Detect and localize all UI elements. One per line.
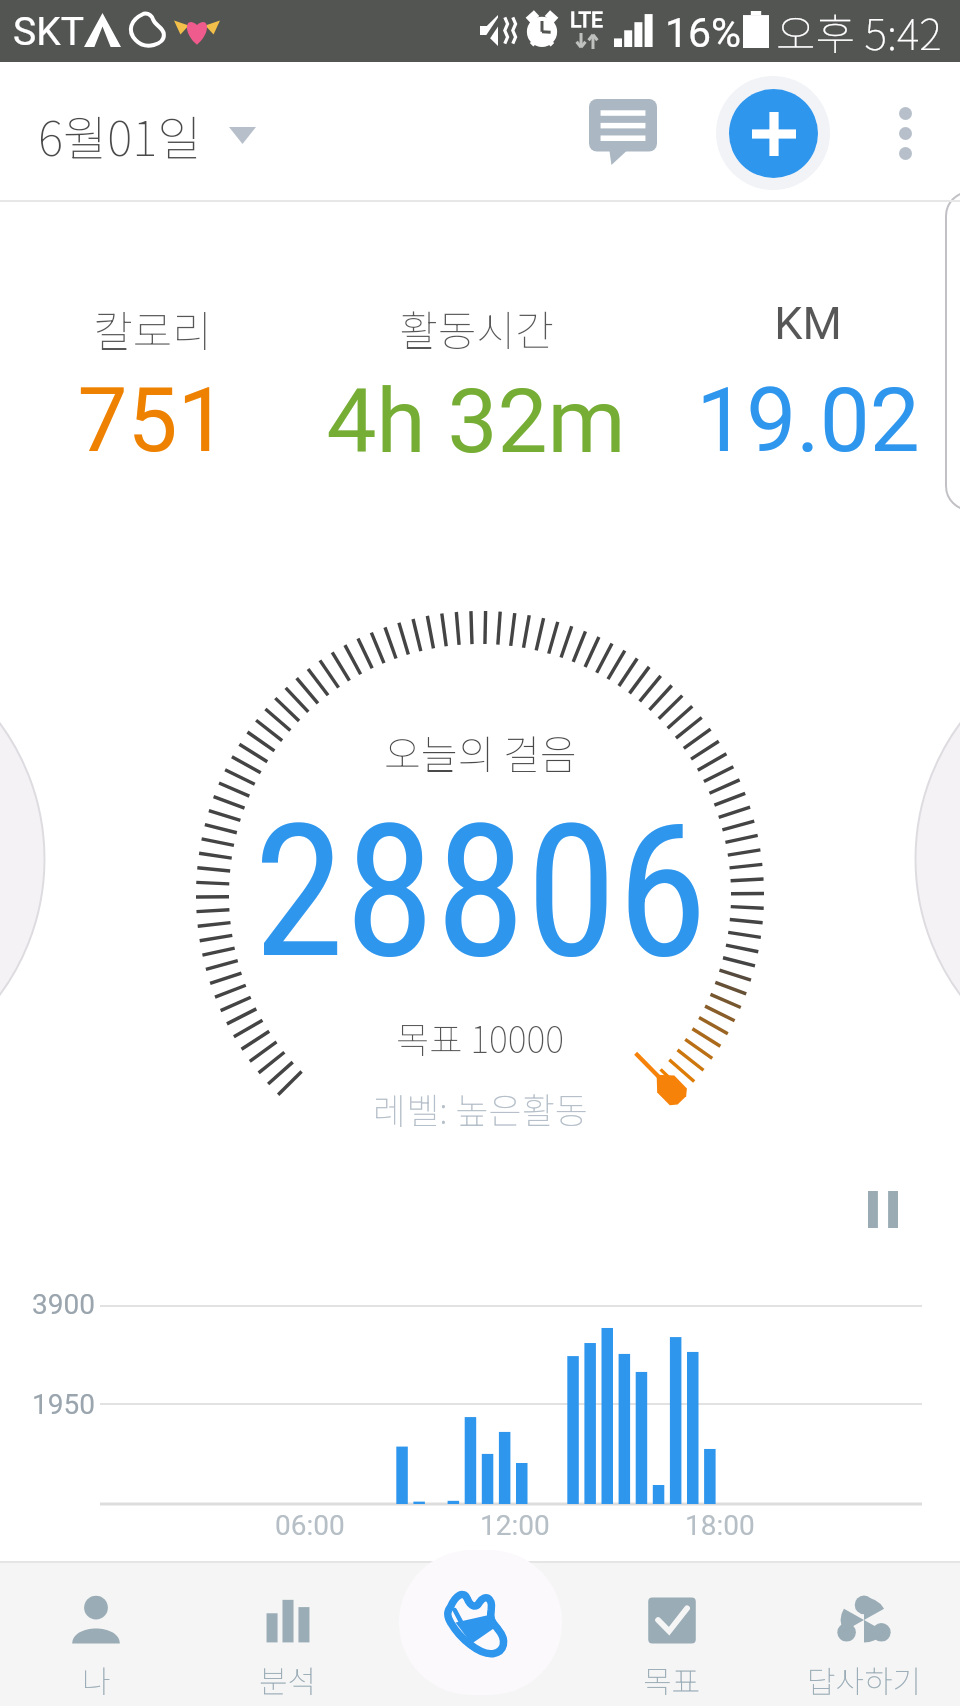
button[interactable]: 분석 — [192, 1561, 384, 1706]
button[interactable]: Messages — [578, 87, 668, 177]
staticText: 오후 5:42 — [776, 0, 942, 62]
staticText: 4h 32m — [326, 369, 626, 473]
staticText: 목표 10000 — [396, 1011, 564, 1063]
staticText: 3900 — [32, 1288, 95, 1321]
button[interactable]: Pause — [852, 1178, 914, 1240]
staticText: 19.02 — [696, 368, 920, 472]
staticText: SKT — [13, 9, 84, 55]
staticText: 16% — [665, 9, 742, 57]
button[interactable]: More options — [862, 90, 948, 176]
staticText: 나 — [82, 1657, 111, 1702]
button[interactable]: Add — [715, 75, 831, 191]
button[interactable]: Steps — [399, 1550, 562, 1695]
staticText: 칼로리 — [93, 297, 212, 359]
staticText: LTE — [570, 8, 603, 33]
staticText: 6월01일 — [38, 100, 202, 170]
staticText: 1950 — [32, 1388, 95, 1421]
staticText: 28806 — [253, 784, 708, 1000]
staticText: KM — [774, 297, 842, 350]
staticText: 06:00 — [275, 1509, 345, 1542]
button[interactable]: 목표 — [576, 1561, 768, 1706]
staticText: 레벨: 높은활동 — [373, 1082, 588, 1134]
button[interactable]: 나 — [0, 1561, 192, 1706]
staticText: 12:00 — [480, 1509, 550, 1542]
staticText: 분석 — [259, 1657, 317, 1702]
staticText: 18:00 — [685, 1509, 755, 1542]
staticText: 목표 — [643, 1657, 701, 1702]
button[interactable]: KM — [648, 297, 960, 472]
button[interactable]: 칼로리 — [0, 297, 312, 472]
staticText: 답사하기 — [807, 1657, 922, 1702]
button[interactable]: 활동시간 — [316, 297, 636, 473]
staticText: 활동시간 — [399, 297, 554, 358]
button[interactable]: 6월01일 — [38, 100, 256, 170]
staticText: 오늘의 걸음 — [384, 723, 577, 781]
staticText: 751 — [77, 368, 228, 472]
button[interactable]: 답사하기 — [768, 1561, 960, 1706]
